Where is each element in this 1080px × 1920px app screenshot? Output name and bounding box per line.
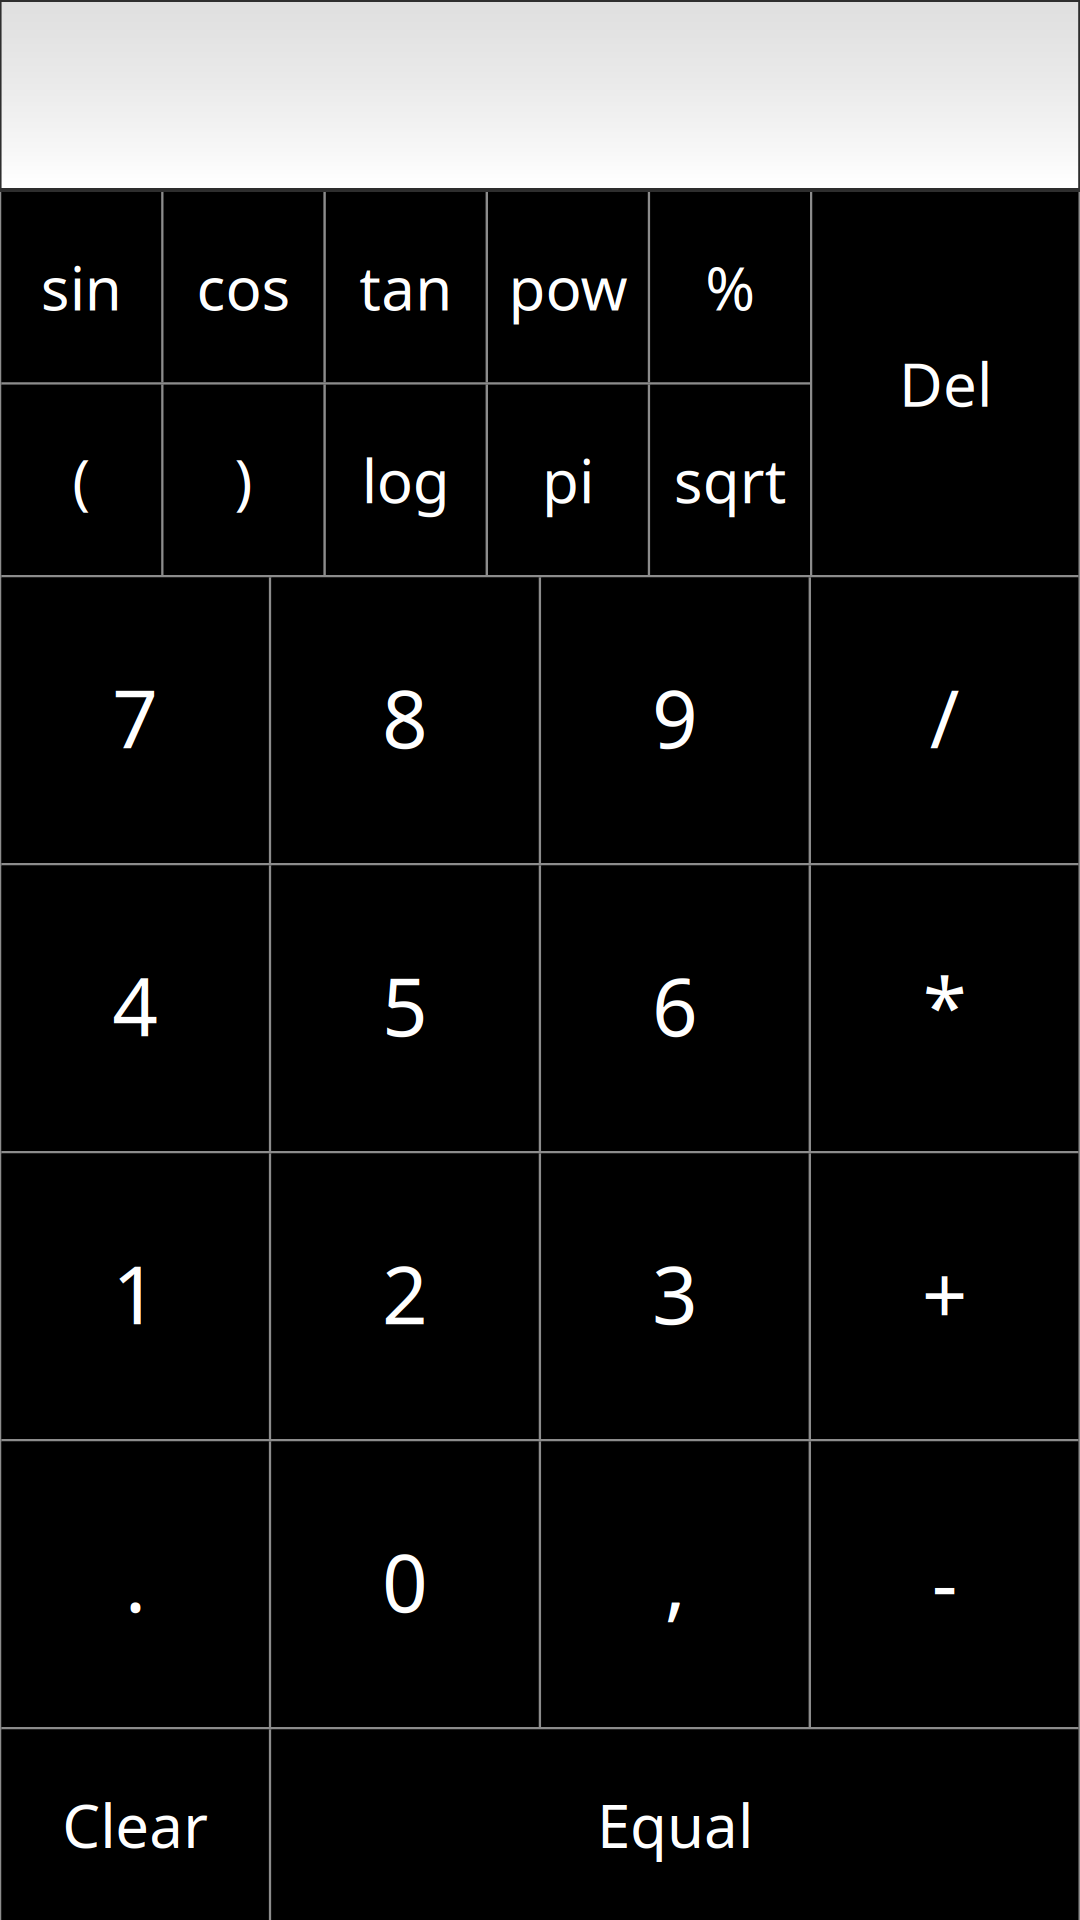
staticText: . bbox=[125, 1528, 146, 1634]
button[interactable]: . bbox=[1, 1441, 269, 1727]
staticText: 6 bbox=[652, 952, 698, 1058]
button[interactable]: tan bbox=[326, 192, 486, 382]
staticText: ( bbox=[72, 440, 90, 520]
button[interactable]: Equal bbox=[271, 1729, 1078, 1920]
button[interactable]: 9 bbox=[541, 577, 809, 863]
button[interactable]: / bbox=[811, 577, 1078, 863]
staticText: pow bbox=[508, 247, 627, 327]
staticText: + bbox=[922, 1240, 968, 1346]
staticText: % bbox=[705, 247, 755, 327]
button[interactable]: - bbox=[811, 1441, 1078, 1727]
staticText: , bbox=[664, 1528, 685, 1634]
staticText: 5 bbox=[382, 952, 428, 1058]
button[interactable]: + bbox=[811, 1153, 1078, 1439]
button[interactable]: pi bbox=[488, 385, 648, 575]
button[interactable]: pow bbox=[488, 192, 648, 382]
staticText: 2 bbox=[382, 1240, 428, 1346]
button[interactable]: % bbox=[650, 192, 810, 382]
staticText: sin bbox=[41, 247, 122, 327]
staticText: ) bbox=[234, 440, 252, 520]
staticText: 7 bbox=[112, 664, 158, 770]
staticText: tan bbox=[359, 247, 452, 327]
staticText: sqrt bbox=[674, 440, 787, 520]
button[interactable]: 5 bbox=[271, 865, 539, 1151]
button[interactable]: ( bbox=[1, 385, 161, 575]
staticText: 8 bbox=[382, 664, 428, 770]
button[interactable]: 2 bbox=[271, 1153, 539, 1439]
button[interactable]: 3 bbox=[541, 1153, 809, 1439]
staticText: 3 bbox=[652, 1240, 698, 1346]
button[interactable]: , bbox=[541, 1441, 809, 1727]
button[interactable]: 4 bbox=[1, 865, 269, 1151]
staticText: pi bbox=[542, 440, 594, 520]
staticText: cos bbox=[196, 247, 290, 327]
staticText: log bbox=[362, 440, 450, 520]
staticText: * bbox=[923, 952, 967, 1058]
staticText: Equal bbox=[597, 1785, 753, 1865]
staticText: - bbox=[932, 1528, 958, 1634]
button[interactable]: sqrt bbox=[650, 385, 810, 575]
staticText: 0 bbox=[382, 1528, 428, 1634]
button[interactable]: Clear bbox=[1, 1729, 269, 1920]
button[interactable]: log bbox=[326, 385, 486, 575]
button[interactable]: 0 bbox=[271, 1441, 539, 1727]
button[interactable]: 1 bbox=[1, 1153, 269, 1439]
button[interactable]: * bbox=[811, 865, 1078, 1151]
button[interactable]: 8 bbox=[271, 577, 539, 863]
button[interactable]: ) bbox=[164, 385, 323, 575]
button[interactable]: 7 bbox=[1, 577, 269, 863]
staticText: / bbox=[930, 664, 960, 770]
staticText: 4 bbox=[112, 952, 158, 1058]
staticText: 1 bbox=[112, 1240, 158, 1346]
staticText: Clear bbox=[62, 1785, 208, 1865]
button[interactable]: 6 bbox=[541, 865, 809, 1151]
staticText: 9 bbox=[652, 664, 698, 770]
button[interactable]: sin bbox=[1, 192, 161, 382]
staticText: Del bbox=[899, 344, 992, 423]
button[interactable]: Del bbox=[812, 192, 1078, 575]
button[interactable]: cos bbox=[164, 192, 323, 382]
